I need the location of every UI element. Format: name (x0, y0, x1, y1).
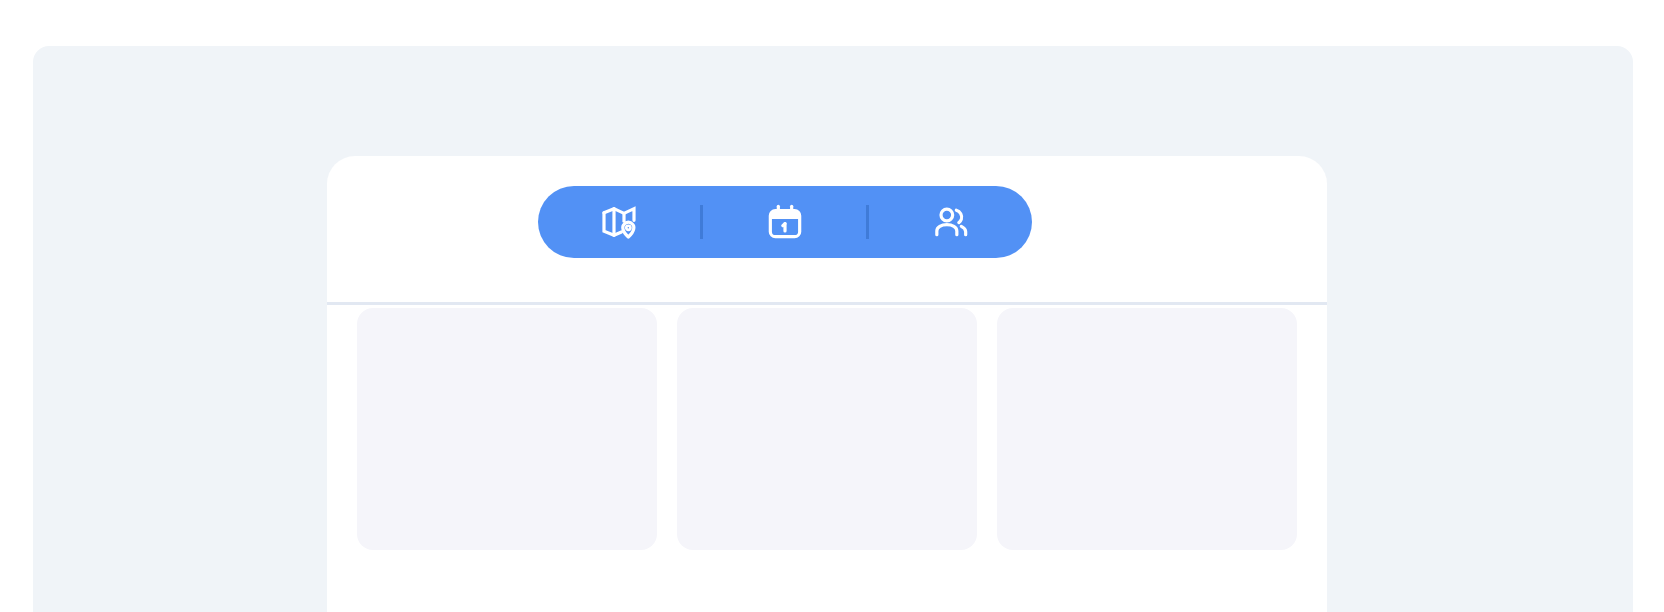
button[interactable]: Calendar (703, 186, 866, 258)
button[interactable]: People (869, 186, 1032, 258)
button[interactable]: Map (538, 186, 700, 258)
